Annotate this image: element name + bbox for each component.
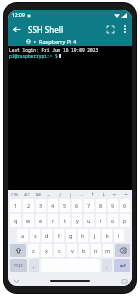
staticText: s xyxy=(34,232,37,239)
button[interactable]: t xyxy=(60,214,70,227)
button[interactable]: s xyxy=(30,229,40,242)
button[interactable]: 3 xyxy=(36,199,46,212)
button[interactable]: / xyxy=(54,191,65,198)
button[interactable]: . xyxy=(102,259,112,272)
staticText: pi@raspberrypi:~ $ xyxy=(9,53,58,59)
button[interactable]: z xyxy=(28,244,39,257)
button[interactable]: i xyxy=(96,214,106,227)
button[interactable]: 2 xyxy=(23,199,34,212)
button[interactable]: ← xyxy=(109,191,120,198)
button[interactable]: Backspace xyxy=(115,244,130,257)
button[interactable]: 4 xyxy=(48,199,58,212)
staticText: y xyxy=(76,217,79,224)
button[interactable]: a xyxy=(17,229,28,242)
button[interactable]: h xyxy=(78,229,88,242)
button[interactable]: v xyxy=(67,244,77,257)
staticText: TAB xyxy=(35,193,41,197)
staticText: 3 xyxy=(39,202,43,209)
button[interactable]: y xyxy=(72,214,82,227)
button[interactable]: o xyxy=(108,214,118,227)
staticText: | xyxy=(69,192,72,198)
button[interactable]: → xyxy=(120,191,131,198)
button[interactable]: More options xyxy=(118,22,132,36)
button[interactable]: 7 xyxy=(84,199,94,212)
staticText: ?123 xyxy=(14,263,23,268)
button[interactable]: Symbols xyxy=(10,259,27,272)
staticText: 4 xyxy=(51,202,55,209)
button[interactable]: c xyxy=(54,244,65,257)
button[interactable]: m xyxy=(103,244,113,257)
staticText: f xyxy=(58,232,60,239)
staticText: . xyxy=(106,262,108,269)
staticText: q xyxy=(14,217,18,224)
button[interactable]: p xyxy=(120,214,130,227)
button[interactable]: d xyxy=(42,229,52,242)
staticText: ↓ xyxy=(102,192,106,197)
button[interactable]: k xyxy=(102,229,112,242)
button[interactable]: Home xyxy=(50,280,90,282)
staticText: ~ xyxy=(47,192,50,198)
button[interactable]: u xyxy=(84,214,94,227)
button[interactable]: Last login: Fri Jun 16 19:09 2023 xyxy=(8,46,132,190)
button[interactable]: Enter xyxy=(114,259,130,272)
button[interactable]: 1 xyxy=(10,199,21,212)
button[interactable]: Switch keyboard xyxy=(120,277,128,285)
button[interactable]: 8 xyxy=(96,199,106,212)
button[interactable]: CTRL xyxy=(9,191,21,198)
staticText: w xyxy=(26,217,31,224)
button[interactable]: Back xyxy=(8,21,24,37)
button[interactable]: e xyxy=(36,214,46,227)
staticText: u xyxy=(87,217,91,224)
button[interactable]: Shift xyxy=(10,244,26,257)
button[interactable]: ~ xyxy=(43,191,54,198)
button[interactable]: g xyxy=(66,229,76,242)
button[interactable]: 5 xyxy=(60,199,70,212)
button[interactable]: x xyxy=(41,244,52,257)
button[interactable]: 0 xyxy=(120,199,130,212)
button[interactable]: l xyxy=(114,229,124,242)
staticText: 12:09 xyxy=(12,12,25,19)
staticText: ALT xyxy=(24,193,30,197)
button[interactable]: Fullscreen xyxy=(102,21,118,37)
staticText: z xyxy=(32,247,35,254)
staticText: j xyxy=(94,232,96,239)
staticText: o xyxy=(111,217,115,224)
button[interactable]: ↓ xyxy=(98,191,109,198)
button[interactable]: - xyxy=(76,191,87,198)
staticText: c xyxy=(58,247,61,254)
staticText: , xyxy=(33,262,35,269)
button[interactable]: 9 xyxy=(108,199,118,212)
staticText: l xyxy=(118,232,120,239)
button[interactable]: j xyxy=(90,229,100,242)
button[interactable]: r xyxy=(48,214,58,227)
staticText: i xyxy=(100,217,102,224)
button[interactable]: ↑ xyxy=(87,191,98,198)
staticText: 7 xyxy=(87,202,91,209)
staticText: h xyxy=(81,232,85,239)
staticText: d xyxy=(45,232,49,239)
staticText: ← xyxy=(113,192,117,197)
button[interactable]: 6 xyxy=(72,199,82,212)
button[interactable]: ALT xyxy=(21,191,32,198)
staticText: 1 xyxy=(14,202,18,209)
staticText: g xyxy=(69,232,73,239)
staticText: t xyxy=(64,217,66,224)
staticText: 6 xyxy=(75,202,79,209)
button[interactable]: TAB xyxy=(32,191,43,198)
button[interactable]: Hide keyboard xyxy=(12,277,20,285)
button[interactable]: n xyxy=(91,244,101,257)
button[interactable]: b xyxy=(79,244,89,257)
staticText: r xyxy=(52,217,55,224)
staticText: p xyxy=(123,217,127,224)
button[interactable]: q xyxy=(10,214,21,227)
staticText: 2 xyxy=(27,202,31,209)
button[interactable]: | xyxy=(65,191,76,198)
staticText: → xyxy=(124,192,128,197)
button[interactable]: w xyxy=(23,214,34,227)
staticText: m xyxy=(105,247,111,254)
staticText: 9 xyxy=(111,202,115,209)
staticText: b xyxy=(82,247,86,254)
button[interactable]: , xyxy=(29,259,39,272)
button[interactable]: f xyxy=(54,229,64,242)
